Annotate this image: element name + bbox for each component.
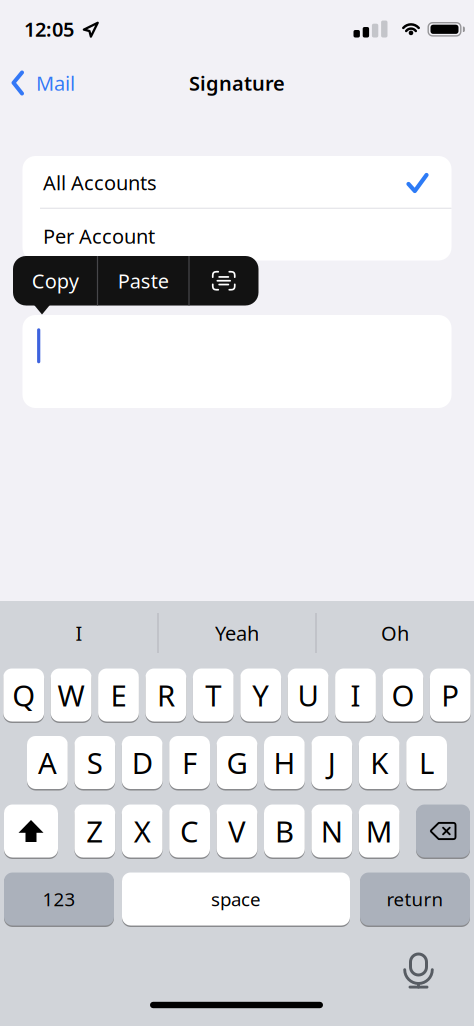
- button[interactable]: G: [217, 736, 257, 789]
- button[interactable]: C: [169, 804, 210, 857]
- staticText: G: [226, 743, 247, 782]
- staticText: Q: [12, 675, 35, 714]
- staticText: H: [273, 743, 295, 782]
- button[interactable]: [390, 944, 446, 996]
- button[interactable]: D: [122, 736, 163, 789]
- button[interactable]: return: [360, 872, 470, 925]
- button[interactable]: Paste: [98, 256, 188, 305]
- button[interactable]: [190, 256, 258, 305]
- button[interactable]: Q: [3, 668, 44, 721]
- staticText: N: [321, 811, 343, 850]
- button[interactable]: P: [430, 668, 471, 721]
- staticText: Z: [86, 811, 103, 850]
- staticText: All Accounts: [43, 169, 157, 196]
- staticText: Copy: [32, 267, 79, 294]
- staticText: P: [441, 675, 459, 714]
- staticText: K: [370, 743, 388, 782]
- button[interactable]: S: [74, 736, 115, 789]
- staticText: T: [205, 675, 221, 714]
- button[interactable]: R: [145, 668, 186, 721]
- staticText: Yeah: [215, 620, 259, 646]
- staticText: D: [132, 743, 153, 782]
- button[interactable]: Yeah: [162, 607, 312, 659]
- button[interactable]: U: [288, 668, 328, 721]
- staticText: M: [366, 811, 393, 850]
- button[interactable]: space: [122, 872, 350, 925]
- staticText: L: [419, 743, 434, 782]
- button[interactable]: E: [98, 668, 139, 721]
- staticText: Mail: [36, 70, 75, 96]
- button[interactable]: V: [217, 804, 257, 857]
- staticText: F: [182, 743, 197, 782]
- button[interactable]: I: [335, 668, 376, 721]
- button[interactable]: [22, 315, 451, 408]
- staticText: return: [386, 887, 443, 911]
- button[interactable]: H: [264, 736, 305, 789]
- staticText: O: [391, 675, 414, 714]
- button[interactable]: T: [193, 668, 234, 721]
- staticText: Paste: [118, 267, 169, 294]
- button[interactable]: F: [169, 736, 210, 789]
- staticText: B: [275, 811, 294, 850]
- staticText: S: [87, 743, 103, 782]
- button[interactable]: X: [122, 804, 163, 857]
- staticText: space: [211, 887, 261, 911]
- button[interactable]: N: [311, 804, 352, 857]
- staticText: W: [58, 675, 85, 714]
- button[interactable]: Copy: [13, 256, 97, 305]
- staticText: Oh: [381, 620, 409, 646]
- button[interactable]: Per Account: [22, 210, 451, 262]
- staticText: A: [38, 743, 57, 782]
- button[interactable]: Z: [74, 804, 115, 857]
- staticText: E: [110, 675, 126, 714]
- button[interactable]: [4, 804, 58, 857]
- button[interactable]: [416, 804, 470, 857]
- button[interactable]: All Accounts: [22, 156, 451, 208]
- staticText: X: [134, 811, 151, 850]
- staticText: I: [75, 620, 82, 646]
- staticText: J: [328, 743, 336, 782]
- staticText: V: [228, 811, 246, 850]
- button[interactable]: Mail: [2, 60, 81, 106]
- button[interactable]: B: [264, 804, 305, 857]
- button[interactable]: K: [359, 736, 400, 789]
- button[interactable]: A: [27, 736, 68, 789]
- staticText: R: [157, 675, 175, 714]
- staticText: 123: [42, 887, 75, 911]
- staticText: Y: [252, 675, 269, 714]
- button[interactable]: M: [359, 804, 400, 857]
- staticText: U: [298, 675, 319, 714]
- staticText: Signature: [189, 70, 285, 96]
- button[interactable]: J: [311, 736, 352, 789]
- staticText: Per Account: [43, 223, 155, 249]
- button[interactable]: Oh: [320, 607, 470, 659]
- button[interactable]: O: [382, 668, 423, 721]
- button[interactable]: Y: [240, 668, 281, 721]
- button[interactable]: L: [406, 736, 447, 789]
- staticText: I: [350, 675, 360, 714]
- button[interactable]: W: [51, 668, 91, 721]
- staticText: 12:05: [24, 16, 74, 42]
- button[interactable]: 123: [4, 872, 114, 925]
- button[interactable]: I: [4, 607, 154, 659]
- staticText: C: [180, 811, 199, 850]
